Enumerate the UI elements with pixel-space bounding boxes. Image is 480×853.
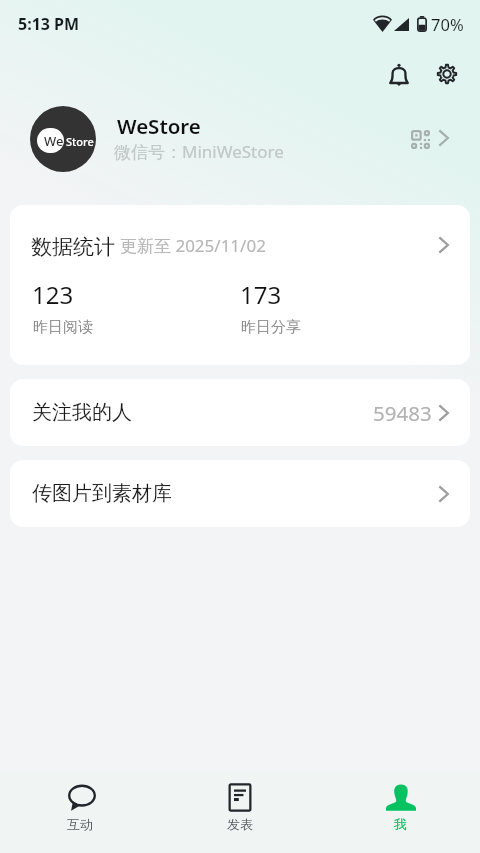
button[interactable]: Settings (426, 53, 468, 95)
staticText: 昨日阅读 (33, 318, 93, 337)
button[interactable]: 发表 (160, 771, 320, 853)
button[interactable]: Notifications (378, 53, 420, 95)
button[interactable]: 数据统计 (10, 205, 470, 365)
staticText: 传图片到素材库 (32, 481, 172, 506)
button[interactable]: QR code (400, 119, 440, 159)
staticText: 70% (431, 13, 464, 35)
staticText: 数据统计 (31, 234, 115, 260)
staticText: 5:13 PM (18, 13, 80, 35)
button[interactable]: 我 (320, 771, 480, 853)
staticText: 173 (240, 278, 282, 311)
staticText: 关注我的人 (32, 400, 132, 425)
staticText: 发表 (227, 816, 253, 832)
staticText: 更新至 2025/11/02 (120, 234, 266, 257)
button[interactable]: 关注我的人 (10, 379, 470, 446)
staticText: We (44, 132, 64, 150)
staticText: Store (66, 134, 94, 149)
staticText: 我 (394, 816, 407, 832)
staticText: 微信号：MiniWeStore (114, 140, 284, 163)
staticText: 互动 (67, 816, 93, 832)
staticText: 昨日分享 (241, 318, 301, 337)
staticText: 59483 (373, 399, 432, 427)
staticText: WeStore (117, 112, 201, 140)
staticText: 123 (32, 278, 74, 311)
button[interactable]: We (14, 99, 404, 179)
button[interactable]: 互动 (0, 771, 160, 853)
button[interactable]: 传图片到素材库 (10, 460, 470, 527)
